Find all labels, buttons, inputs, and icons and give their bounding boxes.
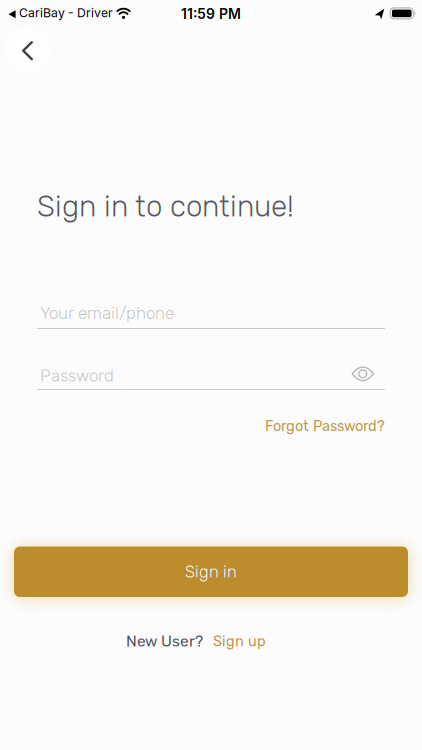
staticText: CariBay - Driver xyxy=(19,5,113,20)
staticText: New User? xyxy=(126,632,203,650)
staticText: Password xyxy=(40,365,114,386)
staticText: Sign in xyxy=(185,562,237,582)
staticText: Sign in to continue! xyxy=(37,189,294,224)
staticText: Sign up xyxy=(213,633,266,650)
button[interactable]: Sign up xyxy=(213,633,266,650)
staticText: Forgot Password? xyxy=(265,417,385,435)
button[interactable]: Sign in xyxy=(14,546,408,597)
button[interactable]: Show password xyxy=(345,360,380,387)
button[interactable]: Back xyxy=(10,29,45,72)
staticText: Your email/phone xyxy=(40,303,174,323)
button[interactable]: Forgot Password? xyxy=(265,417,385,435)
staticText: 11:59 PM xyxy=(181,5,241,22)
